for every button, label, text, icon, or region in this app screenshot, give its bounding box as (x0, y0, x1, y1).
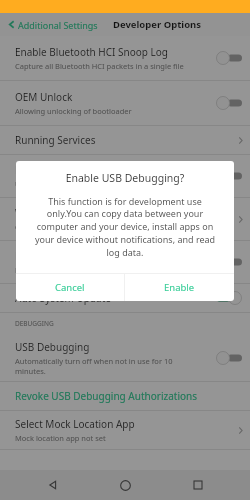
button[interactable]: Enable (125, 274, 234, 301)
button[interactable]: Auto System Update (0, 284, 250, 312)
button[interactable]: Mobile data always active (0, 241, 250, 283)
staticText: Mock location app not set (15, 433, 106, 443)
button[interactable]: Back (33, 470, 73, 500)
button[interactable]: Turn on (214, 251, 244, 273)
staticText: Enable USB Debugging? (16, 171, 234, 185)
button[interactable]: OEM Unlock (0, 81, 250, 125)
staticText: Picture color mode (15, 163, 104, 177)
staticText: Chrome (15, 222, 44, 232)
staticText: Cancel (55, 281, 85, 294)
staticText: Mobile data is always active (15, 265, 113, 275)
staticText: Revoke USB Debugging Authorizations (15, 389, 197, 403)
button[interactable]: WebView implementation (0, 198, 250, 240)
staticText: Capture all Bluetooth HCI packets in a s… (15, 61, 184, 71)
button[interactable]: Picture color mode (0, 155, 250, 197)
staticText: Automatically turn off when not in use f… (15, 356, 193, 376)
staticText: DEBUGGING (15, 319, 54, 328)
button[interactable]: Recent apps (178, 470, 218, 500)
other: Open (232, 132, 248, 148)
staticText: This function is for development use onl… (33, 195, 217, 259)
button[interactable]: Revoke USB Debugging Authorizations (0, 382, 250, 410)
staticText: USB Debugging (15, 340, 90, 354)
button[interactable]: Turn on (214, 92, 244, 114)
other: Open (232, 422, 248, 438)
button[interactable]: Home (105, 470, 145, 500)
button[interactable]: Turn off (214, 287, 244, 309)
button[interactable] (0, 13, 250, 500)
staticText: Allowing unlocking of bootloader (15, 106, 132, 116)
staticText: Use sRGB (15, 179, 49, 189)
staticText: Running Services (15, 133, 96, 147)
staticText: Auto System Update (15, 291, 111, 305)
staticText: WebView implementation (15, 206, 136, 220)
button[interactable]: Running Services (0, 126, 250, 154)
staticText: Enable (164, 281, 195, 294)
staticText: Enable Bluetooth HCI Snoop Log (15, 45, 168, 59)
staticText: Additional Settings (18, 19, 98, 31)
staticText: Developer Options (113, 18, 202, 31)
button[interactable]: Enable Bluetooth HCI Snoop Log (0, 36, 250, 80)
staticText: Mobile data always active (15, 249, 135, 263)
button[interactable]: Turn on (214, 165, 244, 187)
staticText: OEM Unlock (15, 90, 73, 104)
other: Open (232, 211, 248, 227)
button[interactable]: USB Debugging (0, 334, 250, 381)
button[interactable]: Additional Settings (0, 13, 103, 36)
button[interactable]: Cancel (16, 274, 124, 301)
button[interactable]: Turn on (214, 347, 244, 369)
button[interactable]: Select Mock Location App (0, 411, 250, 449)
staticText: Select Mock Location App (15, 417, 135, 431)
button[interactable]: Turn on (214, 47, 244, 69)
